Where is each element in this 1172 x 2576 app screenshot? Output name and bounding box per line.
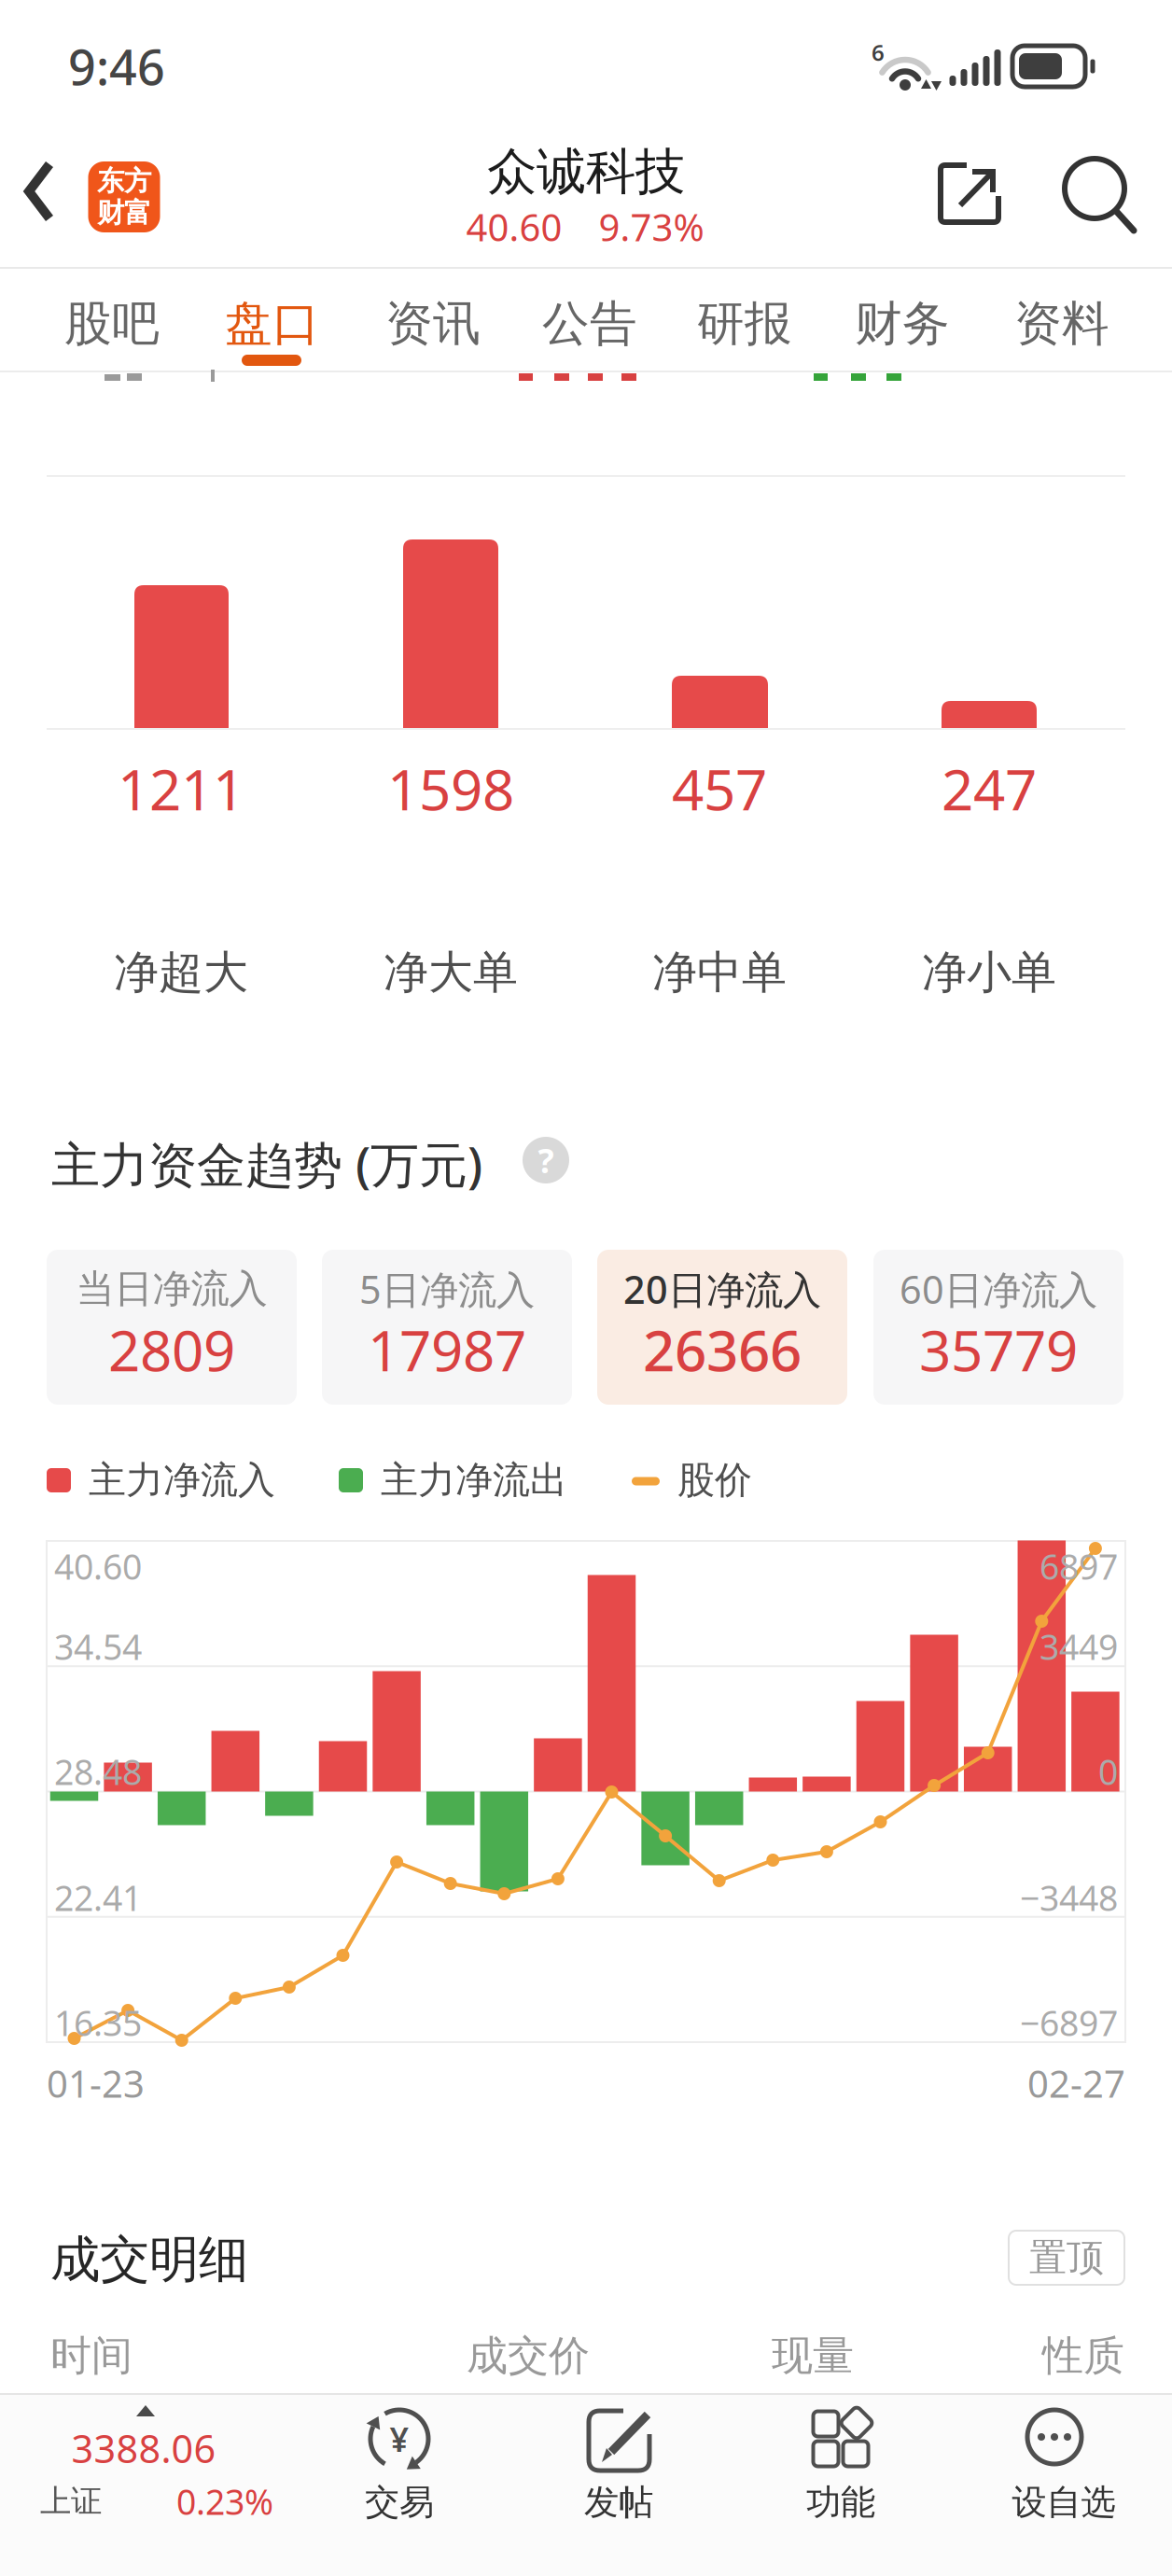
staticText: 上证 <box>40 2482 102 2520</box>
staticText: 6897 <box>1039 1543 1118 1589</box>
staticText: 主力净流出 <box>381 1457 567 1503</box>
staticText: 交易 <box>365 2481 434 2524</box>
staticText: 34.54 <box>54 1623 142 1670</box>
staticText: 功能 <box>806 2481 875 2524</box>
staticText: 股价 <box>677 1457 752 1503</box>
staticText: 60日净流入 <box>900 1263 1097 1315</box>
staticText: 1598 <box>387 752 514 826</box>
button[interactable]: Share <box>934 158 1005 229</box>
staticText: 当日净流入 <box>76 1265 267 1313</box>
staticText: 时间 <box>50 2331 133 2381</box>
staticText: 净中单 <box>652 945 787 1000</box>
staticText: 资料 <box>1014 295 1109 353</box>
staticText: ? <box>538 1138 554 1182</box>
staticText: 财务 <box>855 295 950 353</box>
staticText: 3388.06 <box>71 2423 216 2474</box>
staticText: 置顶 <box>1029 2235 1104 2281</box>
staticText: 26366 <box>643 1312 802 1387</box>
staticText: 资讯 <box>385 295 481 353</box>
staticText: 2809 <box>108 1312 235 1387</box>
staticText: 16.35 <box>54 1999 142 2046</box>
staticText: 247 <box>942 752 1037 826</box>
staticText: 东方 <box>97 164 151 198</box>
staticText: 22.41 <box>54 1874 142 1921</box>
staticText: 17987 <box>368 1312 526 1387</box>
staticText: 40.60 <box>54 1543 142 1589</box>
staticText: 成交明细 <box>50 2229 248 2290</box>
button[interactable]: 股吧 <box>37 273 187 375</box>
staticText: 5日净流入 <box>359 1263 535 1315</box>
button[interactable]: 说明 <box>523 1137 569 1183</box>
staticText: 6 <box>872 37 885 67</box>
button[interactable]: 财务 <box>828 273 977 375</box>
staticText: 40.60 <box>466 202 562 252</box>
staticText: 20日净流入 <box>623 1263 821 1315</box>
button[interactable]: 60日净流入 <box>873 1250 1123 1405</box>
staticText: 性质 <box>1042 2331 1124 2381</box>
button[interactable]: 东方财富 <box>88 161 160 232</box>
staticText: 净小单 <box>922 945 1056 1000</box>
staticText: −3448 <box>1020 1874 1118 1921</box>
staticText: ¥ <box>390 2416 409 2461</box>
staticText: 公告 <box>542 295 637 353</box>
staticText: 盘口 <box>225 295 320 353</box>
button[interactable]: 20日净流入 <box>597 1250 847 1405</box>
staticText: 1211 <box>118 752 244 826</box>
button[interactable]: 当日净流入 <box>47 1250 297 1405</box>
staticText: 0.23% <box>176 2478 273 2524</box>
button[interactable]: 交易 <box>289 2393 509 2576</box>
staticText: 28.48 <box>54 1748 142 1795</box>
staticText: 净超大 <box>114 945 248 1000</box>
staticText: 0 <box>1098 1748 1118 1795</box>
button[interactable]: 资讯 <box>358 273 508 375</box>
button[interactable]: 研报 <box>670 273 819 375</box>
button[interactable]: 盘口 <box>198 273 347 375</box>
staticText: 现量 <box>772 2331 854 2381</box>
staticText: 财富 <box>97 196 151 230</box>
button[interactable]: 设自选 <box>954 2393 1172 2576</box>
button[interactable]: 发帖 <box>509 2393 729 2576</box>
button[interactable]: 资料 <box>987 273 1137 375</box>
button[interactable]: Search <box>1056 150 1140 234</box>
staticText: 35779 <box>919 1312 1078 1387</box>
staticText: 01-23 <box>47 2058 145 2108</box>
button[interactable]: 上证指数 <box>35 2393 282 2576</box>
staticText: 9:46 <box>68 34 165 99</box>
staticText: 研报 <box>697 295 792 353</box>
staticText: 设自选 <box>1012 2481 1116 2524</box>
staticText: 成交价 <box>467 2331 590 2381</box>
button[interactable]: 置顶 <box>1009 2231 1124 2285</box>
staticText: 02-27 <box>1027 2058 1125 2108</box>
staticText: 主力资金趋势 (万元) <box>51 1132 482 1196</box>
staticText: 3449 <box>1039 1623 1118 1670</box>
button[interactable]: 功能 <box>731 2393 951 2576</box>
staticText: 457 <box>672 752 767 826</box>
staticText: 净大单 <box>384 945 518 1000</box>
staticText: 众诚科技 <box>487 141 685 202</box>
button[interactable]: Back <box>9 145 75 238</box>
button[interactable]: 5日净流入 <box>322 1250 572 1405</box>
staticText: −6897 <box>1020 1999 1118 2046</box>
staticText: 9.73% <box>599 202 704 252</box>
staticText: 主力净流入 <box>89 1457 275 1503</box>
staticText: 股吧 <box>64 295 160 353</box>
staticText: 发帖 <box>584 2481 653 2524</box>
button[interactable]: 公告 <box>515 273 664 375</box>
